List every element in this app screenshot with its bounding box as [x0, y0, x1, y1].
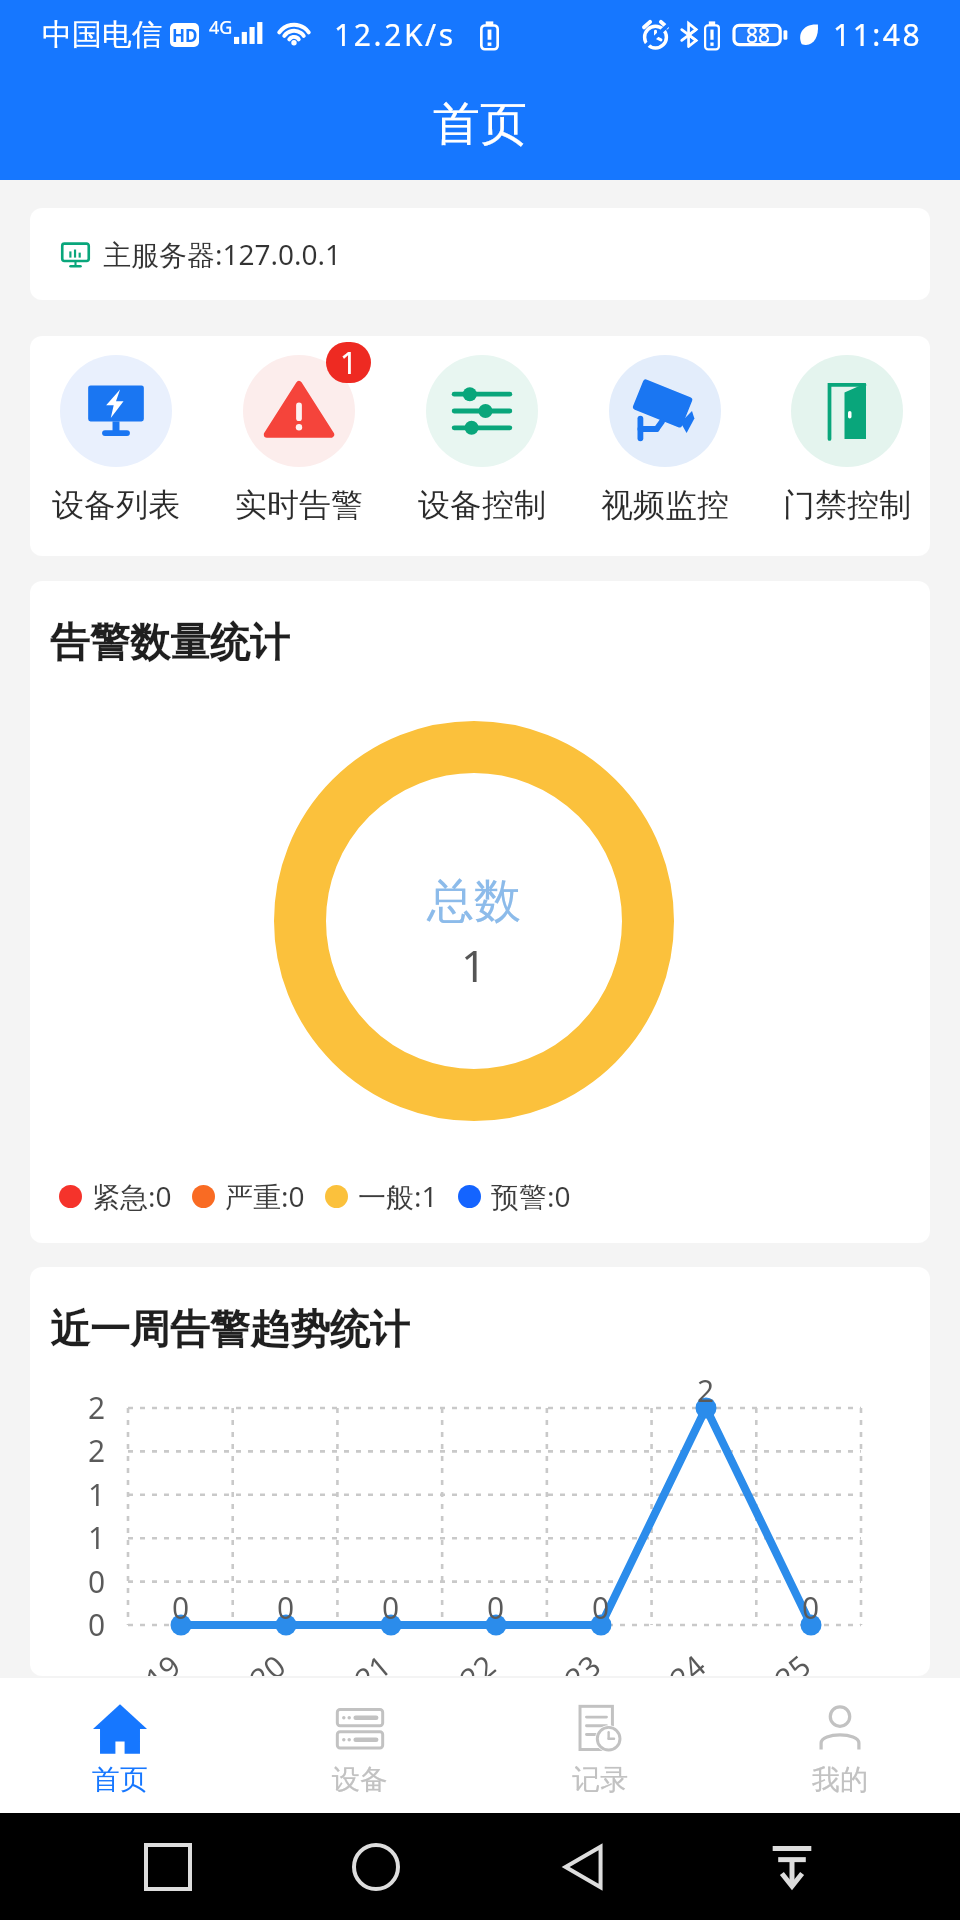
staticText: 设备 — [332, 1762, 388, 1797]
staticText: 告警数量统计 — [50, 617, 290, 667]
staticText: 首页 — [433, 95, 527, 154]
button[interactable]: Home — [336, 1827, 416, 1907]
staticText: 1 — [340, 342, 358, 383]
staticText: 1 — [88, 1517, 104, 1558]
staticText: 08-21 — [312, 1645, 399, 1676]
staticText: 08-25 — [732, 1645, 819, 1676]
staticText: 1 — [88, 1474, 104, 1515]
staticText: 2 — [88, 1430, 104, 1471]
staticText: 0 — [592, 1587, 610, 1628]
staticText: 主服务器:127.0.0.1 — [103, 235, 342, 273]
staticText: 严重:0 — [225, 1177, 305, 1215]
staticText: 88 — [746, 21, 771, 50]
staticText: 08-23 — [522, 1645, 609, 1676]
button[interactable]: 视频监控 — [574, 355, 756, 525]
button[interactable]: 1 — [208, 355, 390, 525]
button[interactable]: 门禁控制 — [756, 355, 930, 525]
staticText: 11:48 — [833, 14, 923, 55]
staticText: 一般:1 — [358, 1177, 438, 1215]
staticText: 门禁控制 — [783, 485, 911, 525]
button[interactable]: 我的 — [720, 1702, 960, 1797]
staticText: 4G — [209, 15, 233, 40]
staticText: 08-19 — [102, 1645, 189, 1676]
staticText: 0 — [487, 1587, 505, 1628]
button[interactable]: 设备列表 — [30, 355, 207, 525]
button[interactable]: 记录 — [480, 1702, 720, 1797]
staticText: HD — [172, 24, 198, 47]
staticText: 08-24 — [627, 1645, 714, 1676]
button[interactable]: 设备控制 — [391, 355, 573, 525]
staticText: 12.2K/s — [334, 14, 456, 55]
staticText: 设备控制 — [418, 485, 546, 525]
button[interactable]: Recents — [128, 1827, 208, 1907]
button[interactable]: 首页 — [0, 1702, 240, 1797]
staticText: 08-22 — [417, 1645, 504, 1676]
staticText: 设备列表 — [52, 485, 180, 525]
staticText: 08-20 — [207, 1645, 294, 1676]
staticText: 记录 — [572, 1762, 628, 1797]
staticText: 实时告警 — [235, 485, 363, 525]
staticText: 预警:0 — [491, 1177, 571, 1215]
staticText: 近一周告警趋势统计 — [50, 1304, 410, 1354]
staticText: 0 — [802, 1587, 820, 1628]
button[interactable]: 设备 — [240, 1702, 480, 1797]
staticText: 0 — [277, 1587, 295, 1628]
staticText: 我的 — [812, 1762, 868, 1797]
staticText: 0 — [88, 1561, 104, 1602]
staticText: 2 — [88, 1387, 104, 1428]
staticText: 0 — [172, 1587, 190, 1628]
staticText: 中国电信 — [42, 16, 162, 54]
button[interactable]: Hide keyboard — [752, 1827, 832, 1907]
staticText: 紧急:0 — [92, 1177, 172, 1215]
staticText: 总数 — [427, 872, 521, 931]
button[interactable]: 主服务器:127.0.0.1 — [30, 208, 930, 300]
staticText: 0 — [88, 1604, 104, 1645]
staticText: 视频监控 — [601, 485, 729, 525]
staticText: 2 — [697, 1370, 715, 1411]
staticText: 首页 — [92, 1762, 148, 1797]
staticText: 1 — [461, 935, 487, 995]
staticText: 0 — [382, 1587, 400, 1628]
button[interactable]: Back — [544, 1827, 624, 1907]
